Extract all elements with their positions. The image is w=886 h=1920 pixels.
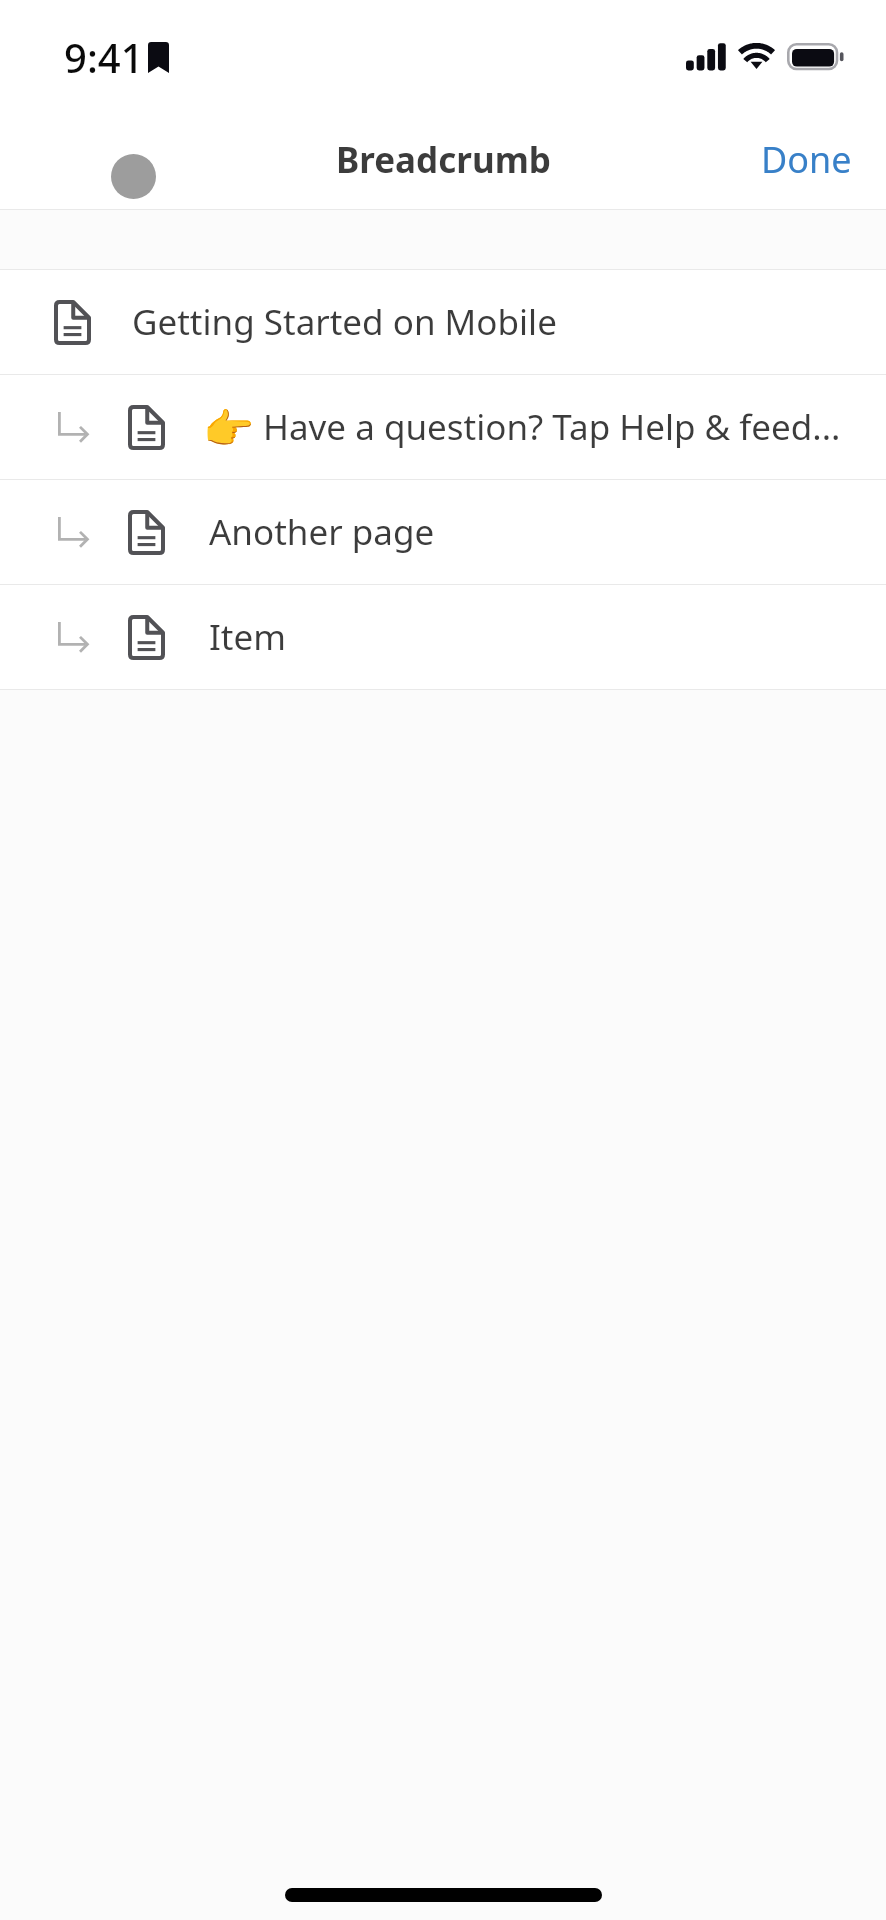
button[interactable]: Another page (0, 480, 886, 584)
staticText: Getting Started on Mobile (132, 298, 557, 346)
button[interactable]: Item (0, 585, 886, 689)
button[interactable]: Done (742, 119, 871, 200)
staticText: 9:41 (64, 30, 144, 84)
staticText: Another page (209, 508, 435, 556)
staticText: 👉 (203, 405, 255, 449)
button[interactable]: 👉 (0, 375, 886, 479)
staticText: Item (209, 613, 286, 661)
button[interactable]: Profile avatar (89, 132, 177, 220)
staticText: Breadcrumb (336, 136, 551, 184)
staticText: Done (761, 135, 852, 184)
staticText: Have a question? Tap Help & feed... (263, 403, 841, 451)
button[interactable]: Getting Started on Mobile (0, 270, 886, 374)
